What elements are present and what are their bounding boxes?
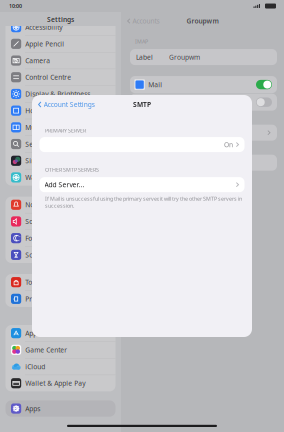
- staticText: Home Screen: [25, 106, 68, 115]
- button[interactable]: Wallet & Apple Pay: [5, 375, 115, 391]
- staticText: Apps: [25, 404, 40, 413]
- staticText: IMAP: [135, 38, 148, 45]
- button[interactable]: Display & Brightness: [5, 86, 115, 102]
- staticText: Camera: [25, 56, 50, 65]
- button[interactable]: Account Settings: [32, 95, 252, 114]
- button[interactable]: Label: [130, 49, 277, 65]
- staticText: Groupwm: [186, 17, 218, 25]
- staticText: Apple Pencil: [25, 39, 64, 48]
- button[interactable]: Search: [5, 136, 115, 153]
- staticText: Privacy & Security: [25, 294, 81, 303]
- staticText: Accessibility: [25, 23, 62, 32]
- staticText: Mail: [148, 80, 162, 89]
- button[interactable]: Siri: [5, 153, 115, 169]
- button[interactable]: Accessibility: [5, 19, 115, 36]
- staticText: Notes: [148, 98, 166, 107]
- button[interactable]: Control Centre: [5, 69, 115, 86]
- staticText: Multitasking & Gestures: [25, 123, 101, 132]
- staticText: On: [224, 140, 233, 149]
- button[interactable]: Wallpaper: [5, 169, 115, 186]
- button[interactable]: Apps: [5, 400, 115, 417]
- button[interactable]: App Store: [5, 325, 115, 342]
- button[interactable]: iCloud: [5, 358, 115, 375]
- button[interactable]: Advanced: [130, 125, 277, 141]
- staticText: Label: [136, 53, 153, 62]
- staticText: Groupwm: [169, 53, 200, 62]
- staticText: Account Settings: [44, 100, 95, 109]
- staticText: Focus: [25, 234, 42, 243]
- staticText: PRIMARY SERVER: [45, 127, 86, 134]
- staticText: SMTP: [133, 100, 151, 109]
- button[interactable]: Camera: [5, 52, 115, 69]
- button[interactable]: Apple Pencil: [5, 36, 115, 52]
- staticText: OTHER SMTP SERVERS: [45, 166, 99, 173]
- button[interactable]: Mail: [256, 80, 272, 89]
- button[interactable]: Notes: [256, 97, 272, 107]
- staticText: Display & Brightness: [25, 89, 90, 98]
- button[interactable]: Screen Time: [5, 247, 115, 263]
- button[interactable]: Home Screen: [5, 102, 115, 119]
- staticText: Add Server...: [44, 180, 84, 189]
- staticText: Search: [25, 140, 47, 148]
- staticText: Sounds: [25, 217, 48, 226]
- staticText: Siri: [25, 156, 36, 165]
- staticText: App Store: [25, 329, 56, 338]
- button[interactable]: Notifications: [5, 197, 115, 213]
- staticText: Touch ID & Passcode: [25, 278, 90, 287]
- button[interactable]: Game Center: [5, 342, 115, 358]
- button[interactable]: Focus: [5, 230, 115, 247]
- button[interactable]: Sounds: [5, 213, 115, 230]
- staticText: Game Center: [25, 345, 67, 354]
- staticText: If Mail is unsuccessful using the primar…: [45, 195, 242, 209]
- staticText: Wallet & Apple Pay: [25, 379, 85, 388]
- staticText: Wallpaper: [25, 173, 58, 182]
- button[interactable]: Add Server...: [39, 177, 244, 192]
- staticText: Control Centre: [25, 73, 71, 82]
- button[interactable]: Accounts: [121, 12, 284, 30]
- staticText: 10:00: [9, 2, 22, 10]
- staticText: Settings: [47, 15, 74, 24]
- staticText: iCloud: [25, 362, 45, 371]
- button[interactable]: Multitasking & Gestures: [5, 119, 115, 136]
- button[interactable]: On: [39, 137, 244, 152]
- button[interactable]: Delete Account: [130, 155, 277, 171]
- staticText: Notifications: [25, 200, 64, 209]
- button[interactable]: Privacy & Security: [5, 291, 115, 307]
- button[interactable]: Touch ID & Passcode: [5, 274, 115, 291]
- staticText: Screen Time: [25, 250, 65, 259]
- staticText: Accounts: [133, 17, 160, 25]
